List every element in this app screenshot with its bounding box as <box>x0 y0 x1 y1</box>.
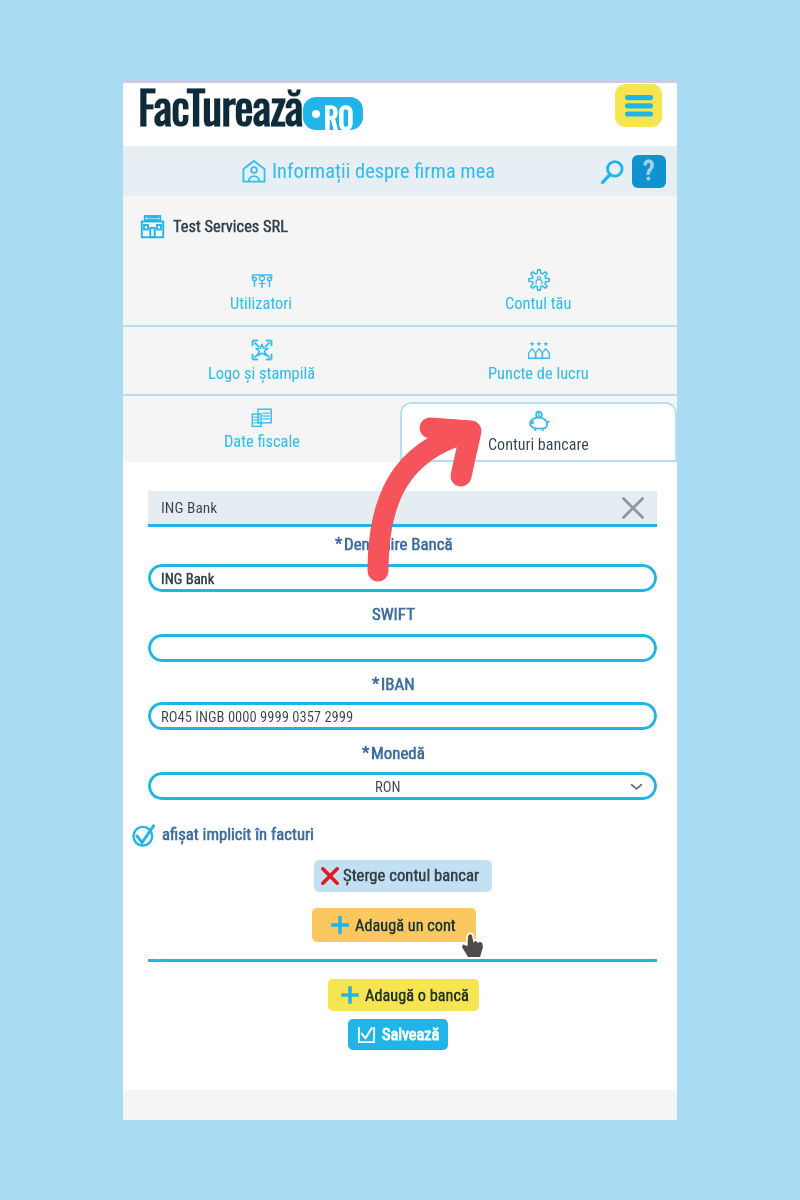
staticText: RO <box>324 97 353 130</box>
staticText: SWIFT <box>372 604 415 624</box>
button[interactable]: Șterge contul bancar <box>314 860 492 892</box>
button[interactable]: Puncte de lucru <box>400 327 677 394</box>
staticText: IBAN <box>381 674 415 694</box>
button[interactable]: afișat implicit în facturi <box>130 821 316 849</box>
button[interactable]: Search <box>599 158 627 186</box>
button[interactable]: Utilizatori <box>123 256 400 325</box>
staticText: RO45 INGB 0000 9999 0357 2999 <box>161 708 354 725</box>
button[interactable]: ING Bank <box>148 491 657 524</box>
staticText: Informații despre firma mea <box>272 159 496 183</box>
staticText: Utilizatori <box>230 294 293 313</box>
staticText: FacTurează <box>138 72 303 134</box>
staticText: * <box>372 673 380 693</box>
staticText: Puncte de lucru <box>488 364 589 383</box>
staticText: Conturi bancare <box>488 435 589 454</box>
button[interactable]: Date fiscale <box>123 396 400 462</box>
staticText: Logo și ștampilă <box>208 364 316 383</box>
button[interactable]: Adaugă un cont <box>312 908 476 942</box>
staticText: Date fiscale <box>224 432 300 451</box>
staticText: Salvează <box>382 1025 440 1044</box>
staticText: * <box>335 533 343 553</box>
button[interactable]: Adaugă o bancă <box>328 979 479 1011</box>
button[interactable]: RO45 INGB 0000 9999 0357 2999 <box>148 702 657 730</box>
button[interactable]: Salvează <box>348 1019 448 1050</box>
staticText: Șterge contul bancar <box>343 866 480 886</box>
button[interactable]: Contul tău <box>400 256 677 325</box>
staticText: ING Bank <box>161 570 215 587</box>
button[interactable]: Conturi bancare <box>400 402 677 462</box>
button[interactable] <box>148 634 657 662</box>
button[interactable]: Logo și ștampilă <box>123 327 400 394</box>
button[interactable]: RON <box>148 772 657 800</box>
button[interactable]: Menu <box>615 84 662 127</box>
staticText: Monedă <box>371 743 425 763</box>
staticText: * <box>362 742 370 762</box>
staticText: Adaugă o bancă <box>365 986 469 1005</box>
button[interactable]: ING Bank <box>148 564 657 592</box>
staticText: RON <box>375 778 401 795</box>
staticText: Denumire Bancă <box>344 534 453 554</box>
button[interactable]: Help <box>632 155 666 188</box>
button[interactable]: Close <box>618 493 648 523</box>
staticText: ? <box>643 155 655 187</box>
staticText: Test Services SRL <box>173 217 289 236</box>
staticText: afișat implicit în facturi <box>162 825 314 845</box>
staticText: ING Bank <box>161 499 218 517</box>
staticText: Contul tău <box>505 294 572 313</box>
staticText: Adaugă un cont <box>355 916 456 935</box>
